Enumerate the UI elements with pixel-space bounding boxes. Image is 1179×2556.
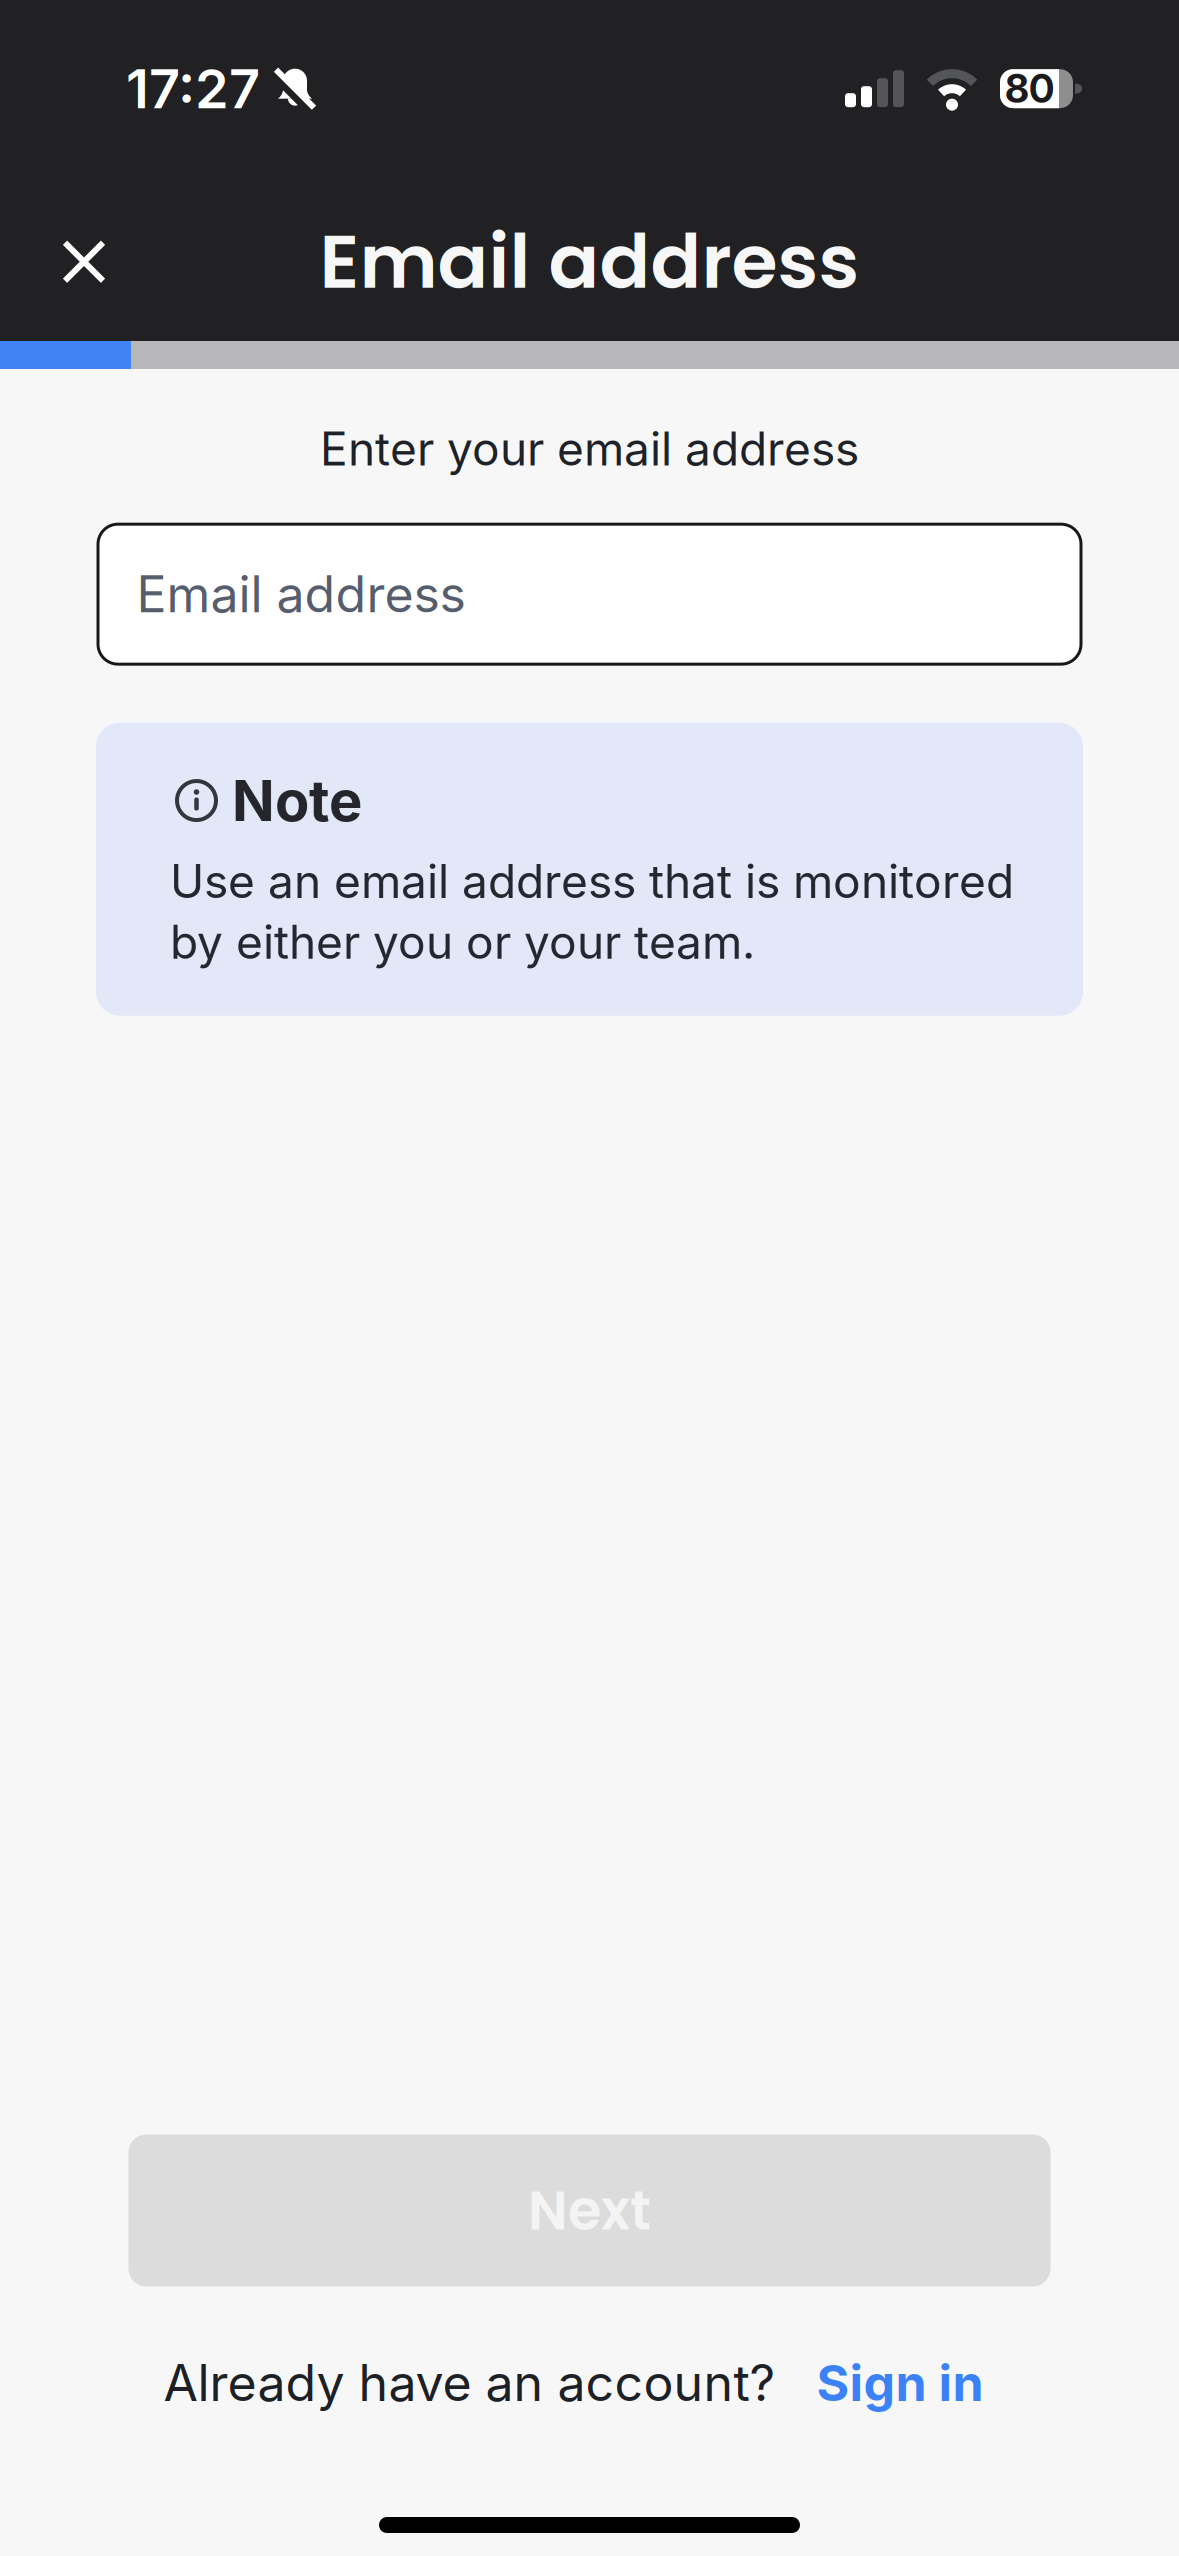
staticText: Sign in [816, 2352, 983, 2413]
button[interactable]: Close [42, 220, 126, 304]
staticText: 80 [1005, 65, 1054, 112]
staticText: Note [232, 767, 362, 834]
staticText: Enter your email address [320, 421, 859, 477]
staticText: Email address [136, 564, 465, 624]
staticText: 17:27 [126, 56, 260, 121]
staticText: Use an email address that is monitored b… [170, 853, 1014, 970]
staticText: Already have an account? [163, 2352, 775, 2413]
button[interactable]: Email address [96, 523, 1082, 666]
staticText: Email address [319, 209, 859, 314]
staticText: Next [528, 2173, 651, 2248]
button[interactable]: Sign in [816, 2352, 983, 2413]
button[interactable]: Next [128, 2134, 1050, 2286]
